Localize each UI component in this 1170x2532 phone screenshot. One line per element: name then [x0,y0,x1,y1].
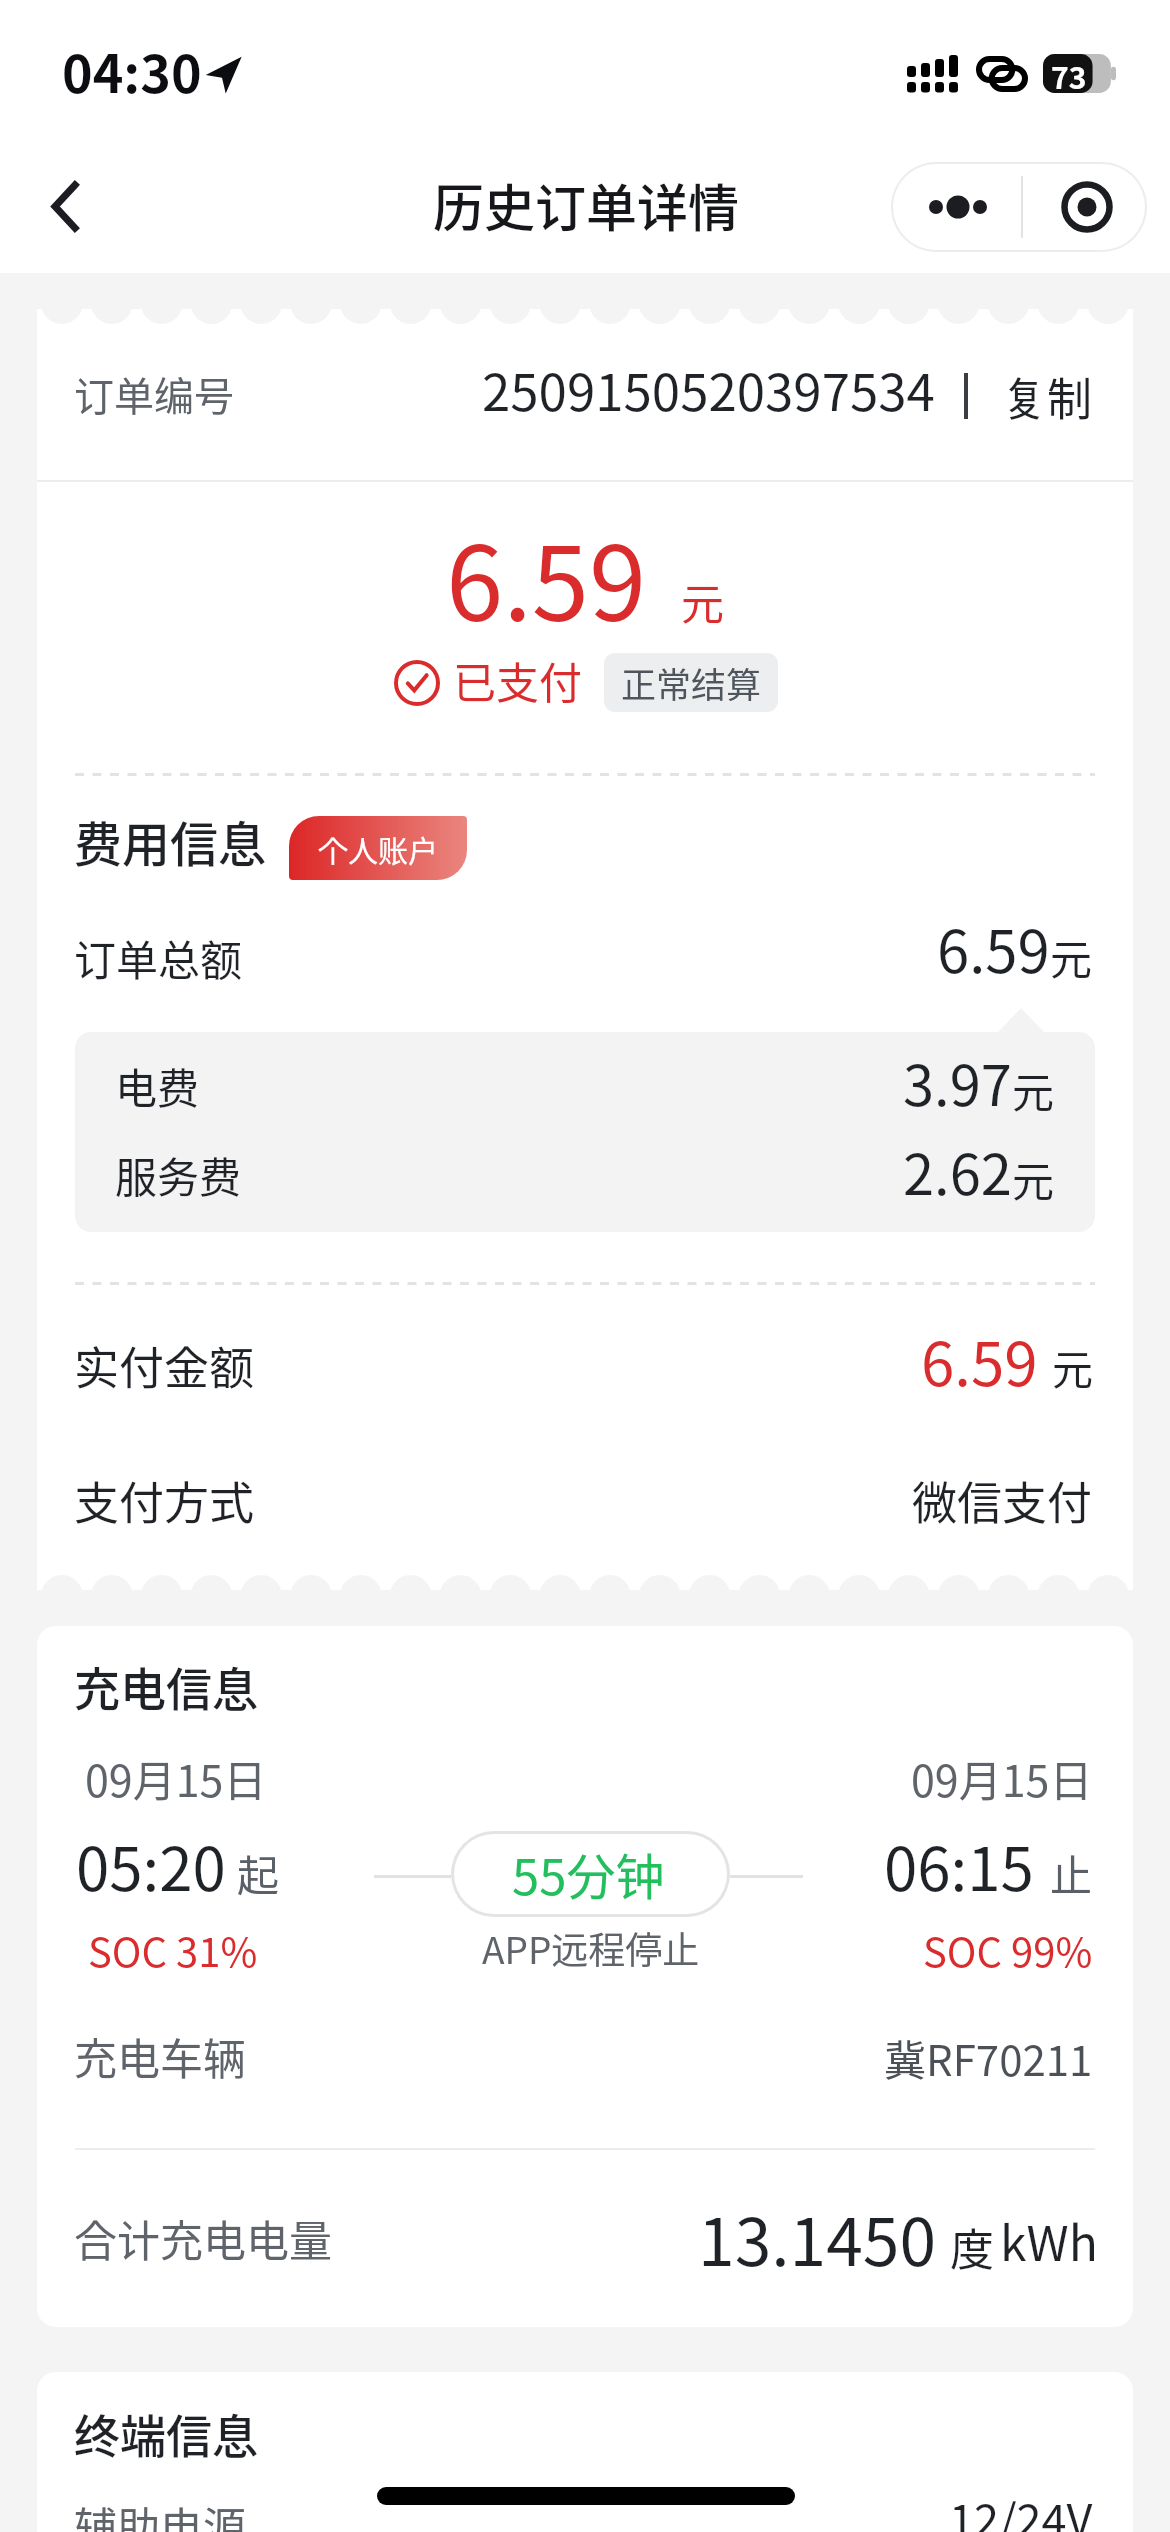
staticText: 04:30 [62,33,202,108]
staticText: 充电车辆 [74,2025,246,2087]
staticText: 度 [950,2215,994,2279]
staticText: 06:15 [884,1821,1034,1908]
staticText: 费用信息 [74,806,267,876]
staticText: 订单编号 [74,365,234,423]
staticText: 09月15日 [85,1747,267,1809]
staticText: 05:20 [76,1821,226,1908]
staticText: 实付金额 [74,1333,255,1398]
staticText: SOC 99% [923,1921,1093,1979]
staticText: 已支付 [453,649,582,711]
button[interactable]: Back [15,151,115,252]
staticText: 73 [1051,54,1087,91]
staticText: 辅助电源 [74,2494,246,2532]
staticText: 终端信息 [74,2400,258,2467]
staticText: 电费 [115,1055,200,1116]
staticText: 合计充电电量 [74,2207,332,2269]
staticText: 冀RF70211 [884,2027,1093,2088]
button[interactable]: Menu [893,164,1145,250]
staticText: 起 [237,1842,280,1903]
staticText: 历史订单详情 [433,168,740,242]
staticText: 6.59 [921,1316,1038,1403]
staticText: 个人账户 [318,827,438,870]
staticText: APP远程停止 [482,1921,700,1975]
staticText: 09月15日 [911,1747,1093,1809]
staticText: 订单总额 [74,927,243,988]
staticText: 微信支付 [912,1468,1093,1533]
staticText: 3.97 [903,1041,1012,1122]
staticText: 元 [1052,1337,1093,1396]
staticText: SOC 31% [88,1921,258,1979]
staticText: 元 [1012,1148,1055,1209]
staticText: 元 [681,570,724,632]
staticText: 支付方式 [74,1468,255,1533]
staticText: 正常结算 [621,657,762,708]
staticText: kWh [1000,2205,1098,2275]
staticText: 元 [1050,926,1093,987]
staticText: 充电信息 [74,1653,258,1720]
staticText: 12/24V [949,2485,1093,2532]
staticText: 元 [1012,1059,1055,1120]
staticText: 6.59 [446,502,647,651]
button[interactable]: 复制 [37,309,128,374]
staticText: 6.59 [937,906,1050,990]
staticText: 55分钟 [512,1838,665,1909]
staticText: 服务费 [115,1144,242,1205]
staticText: 13.1450 [698,2189,937,2285]
staticText: 止 [1050,1842,1093,1903]
staticText: 2509150520397534 [482,352,935,426]
staticText: 2.62 [903,1130,1012,1211]
